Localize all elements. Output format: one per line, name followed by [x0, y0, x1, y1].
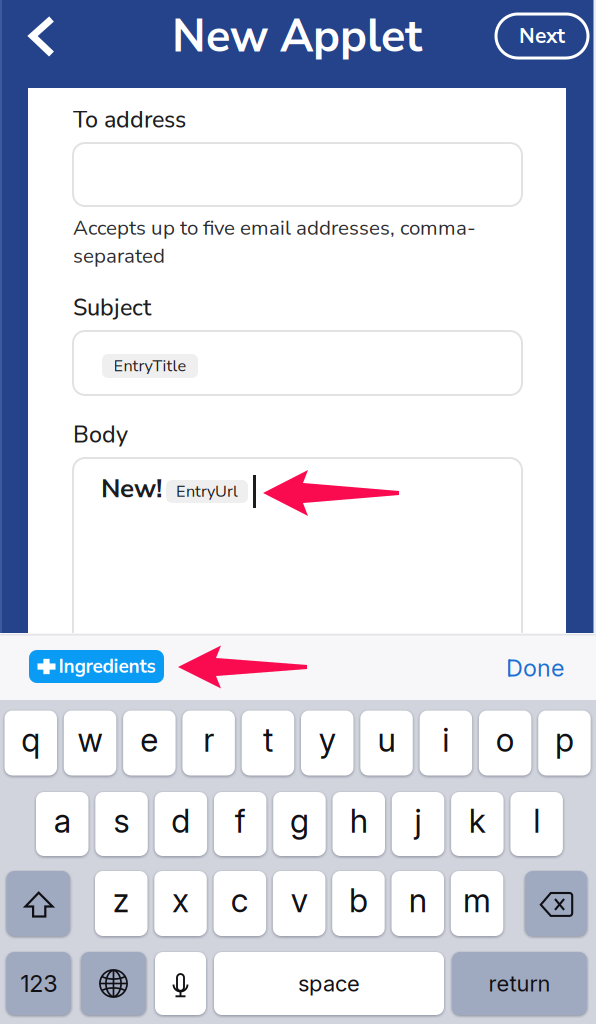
staticText: x [172, 881, 189, 920]
staticText: space [298, 970, 360, 997]
button[interactable]: p [538, 710, 591, 775]
staticText: EntryUrl [176, 480, 238, 503]
button[interactable]: c [214, 871, 266, 936]
button[interactable]: d [155, 792, 207, 856]
staticText: o [496, 720, 515, 760]
staticText: New! [101, 471, 162, 506]
staticText: w [77, 720, 102, 760]
staticText: z [113, 881, 130, 920]
staticText: k [469, 801, 486, 841]
staticText: v [291, 881, 308, 920]
button[interactable]: m [451, 871, 503, 936]
button[interactable]: return [452, 952, 587, 1015]
staticText: t [263, 720, 273, 760]
button[interactable]: Dictation [155, 952, 206, 1015]
staticText: f [235, 801, 246, 841]
staticText: New Applet [172, 6, 422, 67]
staticText: Done [506, 654, 564, 682]
button[interactable]: q [4, 710, 57, 775]
button[interactable]: l [510, 792, 563, 856]
button[interactable]: j [392, 792, 444, 856]
staticText: Body [73, 419, 128, 451]
button[interactable]: s [95, 792, 148, 856]
button[interactable]: g [273, 792, 326, 856]
button[interactable]: Delete [525, 871, 587, 936]
button[interactable]: Done [474, 646, 564, 690]
staticText: u [377, 720, 395, 760]
staticText: a [54, 801, 71, 841]
staticText: Accepts up to five email addresses, comm… [73, 214, 476, 242]
button[interactable]: y [301, 710, 353, 775]
staticText: s [113, 801, 129, 841]
button[interactable]: o [479, 710, 531, 775]
button[interactable]: k [451, 792, 504, 856]
staticText: q [21, 720, 40, 760]
button[interactable]: h [332, 792, 385, 856]
staticText: h [350, 801, 368, 841]
button[interactable]: Next keyboard [81, 952, 146, 1015]
staticText: j [414, 801, 421, 841]
button[interactable]: f [214, 792, 266, 856]
button[interactable]: n [391, 871, 444, 936]
button[interactable]: w [64, 710, 116, 775]
staticText: b [349, 881, 368, 920]
staticText: g [290, 801, 309, 841]
button[interactable]: v [273, 871, 325, 936]
button[interactable]: u [360, 710, 413, 775]
button[interactable]: space [214, 952, 444, 1015]
staticText: n [409, 881, 427, 920]
button[interactable]: x [154, 871, 207, 936]
staticText: y [319, 720, 336, 760]
staticText: c [231, 881, 249, 920]
button[interactable]: b [332, 871, 385, 936]
button[interactable]: Back [0, 0, 82, 88]
button[interactable]: t [242, 710, 294, 775]
button[interactable]: a [36, 792, 88, 856]
staticText: Ingredients [58, 653, 155, 679]
staticText: d [171, 801, 190, 841]
staticText: Subject [73, 292, 151, 324]
button[interactable]: e [123, 710, 176, 775]
button[interactable]: Shift [6, 871, 70, 936]
button[interactable]: r [182, 710, 235, 775]
staticText: 123 [20, 969, 57, 998]
staticText: Next [519, 22, 565, 50]
staticText: To address [73, 104, 186, 136]
staticText: separated [73, 242, 165, 270]
button[interactable]: Numbers [6, 952, 71, 1015]
staticText: l [533, 801, 540, 841]
button[interactable]: Next [496, 14, 588, 58]
staticText: m [463, 881, 491, 920]
staticText: EntryTitle [113, 355, 186, 377]
staticText: i [442, 720, 449, 760]
staticText: r [203, 720, 214, 760]
staticText: p [555, 720, 574, 760]
button[interactable]: Ingredients [29, 650, 164, 683]
staticText: return [488, 970, 550, 997]
staticText: e [140, 720, 158, 760]
button[interactable]: i [420, 710, 472, 775]
button[interactable]: z [95, 871, 147, 936]
